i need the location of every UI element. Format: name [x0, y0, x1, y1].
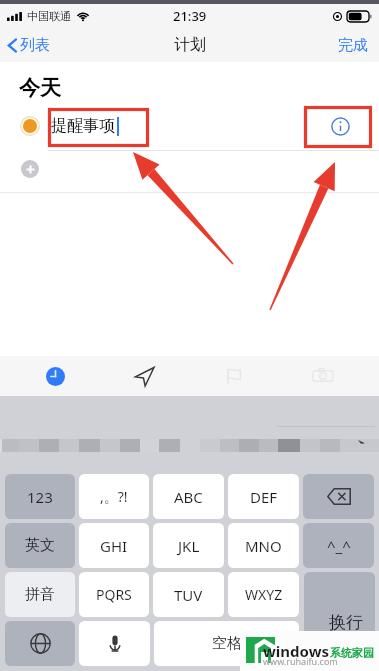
staticText: WXYZ	[245, 585, 283, 604]
button[interactable]: 123	[5, 474, 75, 519]
button[interactable]: 空格	[154, 621, 299, 666]
button[interactable]: ABC	[153, 474, 224, 519]
button[interactable]: MNO	[228, 523, 299, 568]
button[interactable]: Delete	[303, 474, 374, 519]
staticText: 21:39	[173, 7, 207, 25]
staticText: windows	[263, 641, 330, 661]
staticText: 今天	[19, 75, 61, 101]
staticText: GHI	[100, 536, 128, 556]
staticText: 123	[27, 487, 53, 507]
other: Dictate	[79, 621, 150, 666]
staticText: 中国联通	[27, 9, 71, 23]
button[interactable]: Remind me at a time	[11, 356, 100, 396]
button[interactable]: WXYZ	[228, 572, 299, 617]
button[interactable]: 列表	[7, 36, 50, 55]
staticText: JKL	[178, 536, 200, 556]
button[interactable]: TUV	[153, 572, 224, 617]
button[interactable]: Dictate	[79, 621, 150, 666]
button[interactable]: Details	[320, 107, 360, 145]
staticText: 计划	[174, 35, 206, 55]
staticText: 英文	[25, 536, 55, 555]
button[interactable]: ^_^	[303, 523, 374, 568]
button[interactable]: Add reminder	[21, 160, 39, 178]
staticText: TUV	[174, 585, 203, 605]
staticText: ABC	[174, 487, 203, 507]
staticText: 换行	[329, 612, 363, 633]
button[interactable]: PQRS	[79, 572, 149, 617]
other: Switch keyboard	[5, 621, 75, 666]
button[interactable]: Switch keyboard	[5, 621, 75, 666]
staticText: 空格	[212, 634, 242, 653]
button[interactable]: Remind me at a location	[100, 356, 189, 396]
staticText: 拼音	[25, 585, 55, 604]
button[interactable]: 拼音	[5, 572, 75, 617]
other: Delete	[303, 474, 374, 519]
button[interactable]: 完成	[338, 36, 368, 55]
button[interactable]: GHI	[79, 523, 149, 568]
staticText: 提醒事项	[51, 116, 115, 136]
button[interactable]: DEF	[228, 474, 299, 519]
button[interactable]: ,。?!	[79, 474, 149, 519]
button[interactable]: 英文	[5, 523, 75, 568]
staticText: 列表	[20, 36, 50, 55]
staticText: ^_^	[327, 536, 351, 556]
staticText: www.ruhaifu.com	[263, 655, 338, 667]
staticText: PQRS	[96, 585, 132, 604]
button[interactable]: 换行	[304, 572, 375, 666]
button[interactable]: 提醒事项	[0, 107, 379, 145]
staticText: 系统家园	[330, 646, 374, 660]
staticText: ,。?!	[100, 487, 128, 506]
button[interactable]: JKL	[153, 523, 224, 568]
staticText: MNO	[245, 536, 282, 556]
staticText: DEF	[250, 487, 278, 507]
